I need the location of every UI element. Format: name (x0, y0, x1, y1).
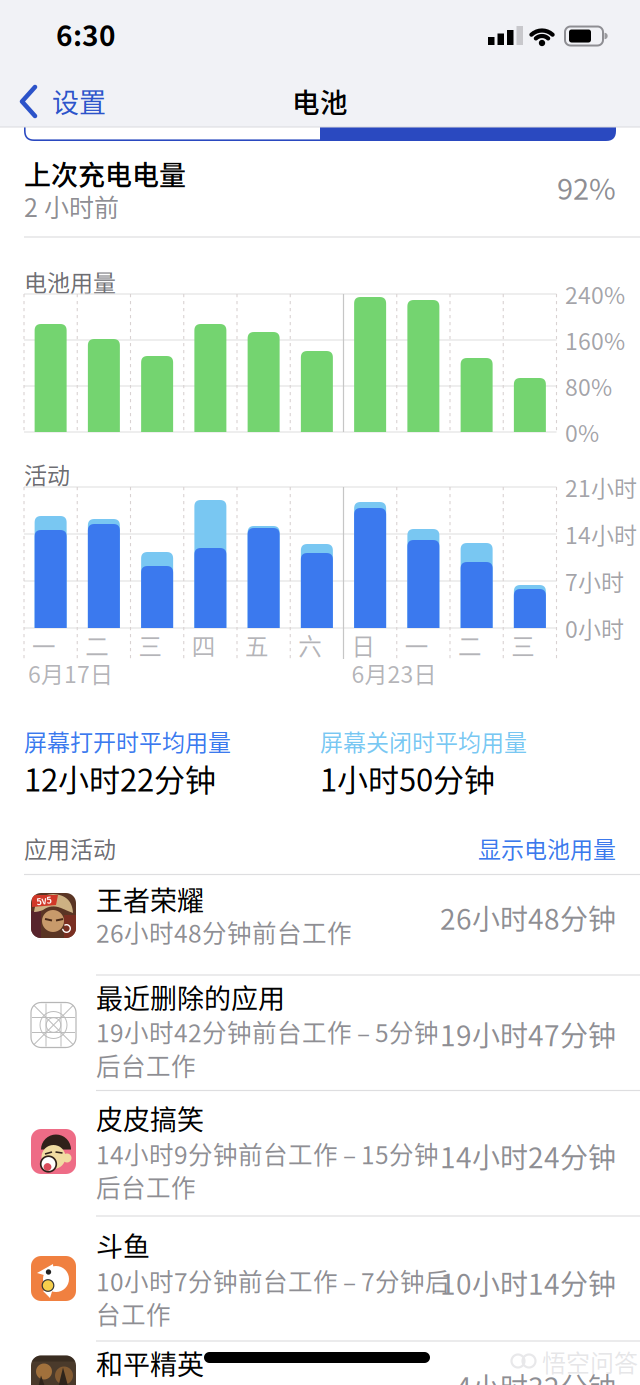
staticText: 92% (557, 166, 616, 208)
staticText: 80% (565, 369, 612, 403)
staticText: 斗鱼 (96, 1225, 150, 1265)
staticText: 一 (32, 628, 56, 662)
staticText: 台工作 (96, 1296, 171, 1331)
staticText: 10小时7分钟前台工作 – 7分钟后 (96, 1263, 450, 1298)
staticText: 电池用量 (24, 265, 116, 298)
button[interactable]: 设置 (13, 74, 143, 128)
staticText: 10小时14分钟 (440, 1262, 616, 1303)
staticText: 二 (85, 628, 109, 662)
staticText: 后台工作 (96, 1047, 196, 1083)
button[interactable]: 5v5 (0, 874, 640, 975)
staticText: 一 (405, 628, 429, 662)
staticText: 二 (458, 628, 482, 662)
staticText: 日 (351, 628, 375, 662)
staticText: 四 (192, 628, 216, 662)
staticText: 7小时 (565, 564, 624, 598)
staticText: 王者荣耀 (96, 879, 204, 919)
staticText: 三 (511, 628, 535, 662)
staticText: 皮皮搞笑 (96, 1098, 204, 1138)
staticText: 21小时 (565, 470, 637, 504)
staticText: 三 (138, 628, 162, 662)
staticText: 应用活动 (24, 831, 116, 865)
staticText: 0% (565, 415, 599, 449)
staticText: 五 (245, 628, 269, 662)
staticText: 12小时22分钟 (24, 756, 216, 800)
staticText: 上次充电电量 (24, 154, 186, 193)
staticText: 6:30 (56, 14, 116, 54)
button[interactable]: 和平精英 (0, 1341, 640, 1385)
button[interactable]: 皮皮搞笑 (0, 1090, 640, 1216)
staticText: 14小时24分钟 (440, 1136, 616, 1176)
button[interactable] (320, 127, 616, 141)
staticText: 19小时47分钟 (440, 1014, 616, 1054)
button[interactable]: 最近删除的应用 (0, 975, 640, 1090)
staticText: 活动 (24, 457, 70, 491)
staticText: 电池 (292, 81, 348, 121)
staticText: 屏幕打开时平均用量 (24, 724, 231, 758)
staticText: 19小时42分钟前台工作 – 5分钟 (96, 1014, 439, 1049)
staticText: 14小时 (565, 517, 637, 551)
staticText: 14小时9分钟前台工作 – 15分钟 (96, 1136, 439, 1171)
button[interactable] (24, 127, 320, 141)
staticText: 后台工作 (96, 1169, 196, 1204)
button[interactable]: 斗鱼 (0, 1216, 640, 1341)
staticText: 240% (565, 277, 625, 311)
staticText: 160% (565, 323, 625, 357)
staticText: 0小时 (565, 611, 624, 645)
staticText: 1小时50分钟 (320, 756, 495, 800)
staticText: 5v5 (36, 894, 51, 907)
staticText: 设置 (52, 81, 106, 121)
staticText: 六 (298, 628, 322, 662)
staticText: 6月17日 (28, 656, 113, 690)
staticText: 2 小时前 (24, 188, 119, 224)
staticText: 最近删除的应用 (96, 977, 285, 1017)
button[interactable]: 显示电池用量 (366, 828, 616, 868)
staticText: 4小时32分钟 (456, 1366, 616, 1385)
staticText: 26小时48分钟 (440, 897, 616, 938)
staticText: 屏幕关闭时平均用量 (320, 724, 527, 758)
staticText: 26小时48分钟前台工作 (96, 914, 352, 950)
staticText: 和平精英 (96, 1343, 204, 1383)
staticText: 悟空问答 (542, 1344, 638, 1379)
staticText: 6月23日 (351, 656, 436, 690)
staticText: 显示电池用量 (478, 831, 616, 865)
